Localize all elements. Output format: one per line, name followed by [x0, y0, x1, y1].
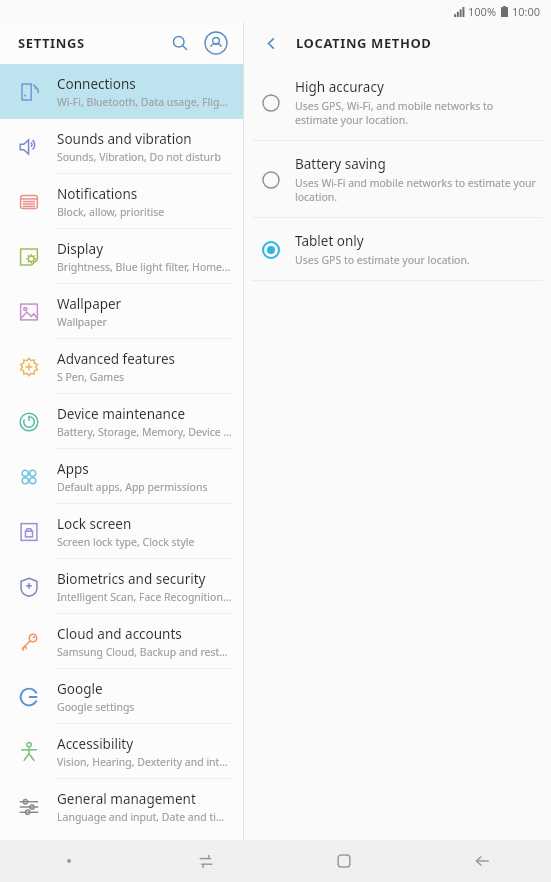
- button[interactable]: Back: [413, 840, 551, 882]
- staticText: LOCATING METHOD: [296, 34, 432, 52]
- button[interactable]: Tablet only: [244, 218, 551, 281]
- button[interactable]: Battery saving: [244, 141, 551, 218]
- button[interactable]: Account: [201, 28, 231, 58]
- staticText: Lock screen: [57, 515, 132, 533]
- button[interactable]: Display: [0, 229, 243, 284]
- button[interactable]: High accuracy: [244, 64, 551, 141]
- staticText: Tablet only: [295, 232, 364, 250]
- staticText: Wallpaper: [57, 315, 107, 329]
- staticText: Uses GPS, Wi-Fi, and mobile networks to …: [295, 99, 537, 127]
- button[interactable]: Connections: [0, 64, 243, 119]
- staticText: Uses GPS to estimate your location.: [295, 253, 470, 267]
- staticText: Accessibility: [57, 735, 134, 753]
- staticText: Screen lock type, Clock style: [57, 535, 195, 549]
- staticText: General management: [57, 790, 196, 808]
- staticText: High accuracy: [295, 78, 384, 96]
- staticText: Device maintenance: [57, 405, 186, 423]
- button[interactable]: Sounds and vibration: [0, 119, 243, 174]
- staticText: Connections: [57, 75, 136, 93]
- staticText: Cloud and accounts: [57, 625, 182, 643]
- staticText: Google: [57, 680, 103, 698]
- button[interactable]: Apps: [0, 449, 243, 504]
- button[interactable]: Notifications: [0, 174, 243, 229]
- button[interactable]: Cloud and accounts: [0, 614, 243, 669]
- button[interactable]: Device maintenance: [0, 394, 243, 449]
- button[interactable]: Google: [0, 669, 243, 724]
- button[interactable]: Wallpaper: [0, 284, 243, 339]
- staticText: Apps: [57, 460, 89, 478]
- staticText: 10:00: [512, 4, 541, 19]
- staticText: Google settings: [57, 700, 135, 714]
- button[interactable]: Home: [275, 840, 413, 882]
- button[interactable]: Accessibility: [0, 724, 243, 779]
- staticText: Uses Wi-Fi and mobile networks to estima…: [295, 176, 537, 204]
- staticText: Battery saving: [295, 155, 386, 173]
- staticText: Brightness, Blue light filter, Home sc…: [57, 260, 233, 274]
- staticText: Display: [57, 240, 104, 258]
- staticText: Default apps, App permissions: [57, 480, 208, 494]
- staticText: Vision, Hearing, Dexterity and intera…: [57, 755, 233, 769]
- staticText: 100%: [468, 4, 497, 19]
- button[interactable]: General management: [0, 779, 243, 834]
- staticText: Intelligent Scan, Face Recognition,…: [57, 590, 233, 604]
- staticText: Wallpaper: [57, 295, 122, 313]
- button[interactable]: Lock screen: [0, 504, 243, 559]
- staticText: Advanced features: [57, 350, 176, 368]
- button[interactable]: Advanced features: [0, 339, 243, 394]
- staticText: Samsung Cloud, Backup and restor…: [57, 645, 233, 659]
- staticText: Wi-Fi, Bluetooth, Data usage, Flight…: [57, 95, 233, 109]
- button[interactable]: Biometrics and security: [0, 559, 243, 614]
- staticText: Block, allow, prioritise: [57, 205, 165, 219]
- staticText: Language and input, Date and time,…: [57, 810, 233, 824]
- staticText: Sounds, Vibration, Do not disturb: [57, 150, 221, 164]
- staticText: Notifications: [57, 185, 138, 203]
- staticText: S Pen, Games: [57, 370, 125, 384]
- button[interactable]: Back: [256, 28, 286, 58]
- staticText: SETTINGS: [18, 34, 85, 52]
- staticText: Battery, Storage, Memory, Device se…: [57, 425, 233, 439]
- button[interactable]: Recents: [137, 840, 275, 882]
- button[interactable]: Search: [165, 28, 195, 58]
- staticText: Sounds and vibration: [57, 130, 192, 148]
- staticText: Biometrics and security: [57, 570, 206, 588]
